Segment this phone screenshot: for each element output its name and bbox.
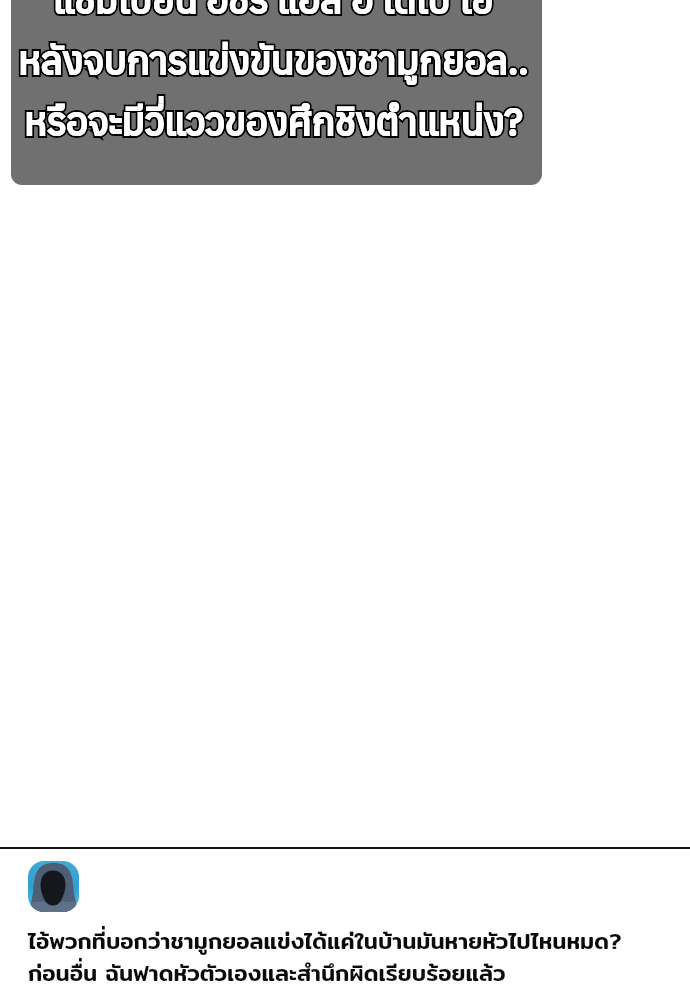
staticText: หลังจบการแข่งขันของชามูกยอล.. (18, 35, 529, 84)
staticText: ไอ้พวกที่บอกว่าชามูกยอลแข่งได้แค่ในบ้านม… (28, 923, 622, 991)
staticText: แชมเปี้ยน อชร แอส อ ไดเบ ไย (53, 0, 494, 23)
staticText: หรือจะมีวี่แววของศึกชิงตำแหน่ง? (24, 96, 523, 145)
button[interactable]: Commenter avatar (28, 861, 79, 912)
staticText: แชมเปี้ยน อชร แอส อ ไดเบ ไย (53, 0, 494, 23)
staticText: หรือจะมีวี่แววของศึกชิงตำแหน่ง? (24, 96, 523, 145)
staticText: แชมเปี้ยน อชร แอส อ ไดเบ ไย (53, 0, 494, 23)
staticText: หลังจบการแข่งขันของชามูกยอล.. (18, 35, 529, 84)
button[interactable]: Comic panel (11, 0, 542, 185)
staticText: หลังจบการแข่งขันของชามูกยอล.. (18, 35, 529, 84)
staticText: หรือจะมีวี่แววของศึกชิงตำแหน่ง? (24, 96, 523, 145)
